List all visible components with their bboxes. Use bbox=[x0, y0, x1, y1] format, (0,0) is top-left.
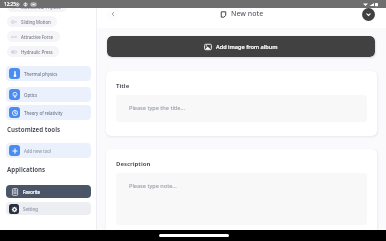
button[interactable]: Theory of relativity bbox=[6, 105, 91, 120]
staticText: Sliding Motion bbox=[21, 19, 51, 25]
staticText: Favorite bbox=[23, 189, 41, 195]
staticText: Applications bbox=[7, 165, 46, 173]
button[interactable]: Favorite bbox=[6, 185, 91, 198]
button[interactable]: Mechanical Physics bbox=[7, 1, 67, 12]
staticText: New note bbox=[231, 9, 264, 19]
button[interactable]: Add new tool bbox=[6, 143, 91, 158]
button[interactable]: Thermal physics bbox=[6, 66, 91, 81]
staticText: Theory of relativity bbox=[24, 110, 63, 116]
staticText: Please type note... bbox=[129, 182, 177, 190]
button[interactable]: Please type the title... bbox=[116, 95, 367, 122]
button[interactable]: Setting bbox=[6, 202, 91, 215]
button[interactable]: Collapse bbox=[362, 8, 375, 21]
button[interactable]: Optics bbox=[6, 87, 91, 102]
staticText: Hydraulic Press bbox=[21, 49, 53, 55]
button[interactable]: Attractive Force bbox=[7, 31, 60, 42]
staticText: Add new tool bbox=[24, 148, 52, 154]
button[interactable]: Sliding Motion bbox=[7, 16, 57, 27]
staticText: Description bbox=[116, 160, 151, 168]
button[interactable]: Hydraulic Press bbox=[7, 46, 59, 57]
staticText: Thermal physics bbox=[24, 71, 58, 77]
staticText: Add image from album bbox=[216, 43, 278, 51]
staticText: Mechanical Physics bbox=[21, 4, 61, 10]
button[interactable]: Add image from album bbox=[107, 36, 375, 57]
staticText: Title bbox=[116, 82, 130, 90]
button[interactable]: Back bbox=[107, 8, 119, 20]
staticText: Please type the title... bbox=[129, 104, 185, 112]
staticText: Attractive Force bbox=[21, 34, 54, 40]
staticText: Setting bbox=[23, 206, 38, 212]
staticText: 12:25 bbox=[4, 1, 16, 7]
button[interactable]: Please type note... bbox=[116, 173, 367, 225]
staticText: Optics bbox=[24, 92, 38, 98]
staticText: Customized tools bbox=[7, 125, 61, 133]
